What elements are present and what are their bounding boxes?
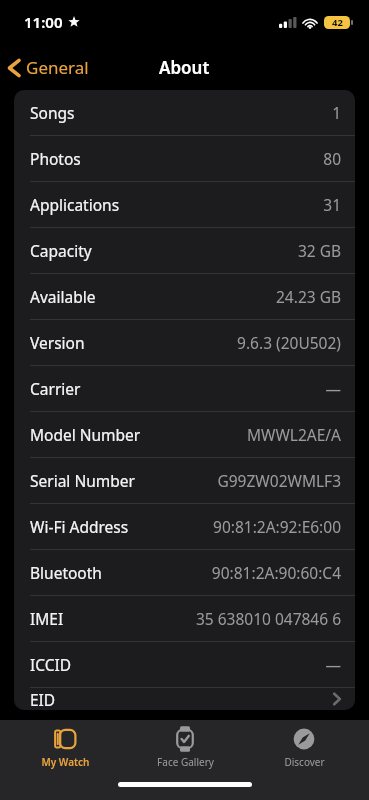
button[interactable]: General: [0, 50, 99, 85]
button[interactable]: My Watch: [10, 724, 120, 771]
button[interactable]: Carrier: [14, 366, 355, 411]
button[interactable]: Discover: [249, 724, 359, 771]
staticText: About: [159, 56, 210, 79]
staticText: Available: [30, 286, 96, 307]
staticText: 80: [323, 148, 341, 169]
button[interactable]: IMEI: [14, 596, 355, 641]
button[interactable]: EID: [14, 688, 355, 710]
staticText: My Watch: [41, 755, 90, 769]
staticText: —: [325, 654, 341, 675]
staticText: 90:81:2A:90:60:C4: [211, 562, 341, 583]
staticText: MWWL2AE/A: [246, 424, 341, 445]
staticText: Songs: [30, 102, 75, 123]
staticText: Face Gallery: [157, 755, 214, 769]
staticText: IMEI: [30, 608, 64, 629]
staticText: 90:81:2A:92:E6:00: [213, 516, 341, 537]
staticText: 42: [332, 16, 343, 29]
staticText: General: [26, 56, 89, 79]
staticText: 35 638010 047846 6: [195, 608, 341, 629]
staticText: Discover: [284, 755, 325, 769]
button[interactable]: Version: [14, 320, 355, 365]
staticText: Serial Number: [30, 470, 135, 491]
staticText: Carrier: [30, 378, 81, 399]
staticText: Model Number: [30, 424, 141, 445]
staticText: Wi-Fi Address: [30, 516, 129, 537]
button[interactable]: Photos: [14, 136, 355, 181]
staticText: —: [325, 378, 341, 399]
button[interactable]: Available: [14, 274, 355, 319]
staticText: Capacity: [30, 240, 92, 261]
staticText: ICCID: [30, 654, 72, 675]
button[interactable]: Bluetooth: [14, 550, 355, 595]
staticText: 31: [323, 194, 341, 215]
staticText: Photos: [30, 148, 81, 169]
button[interactable]: Model Number: [14, 412, 355, 457]
button[interactable]: Songs: [14, 90, 355, 135]
staticText: 1: [332, 102, 341, 123]
staticText: Bluetooth: [30, 562, 102, 583]
staticText: EID: [30, 689, 56, 710]
button[interactable]: Applications: [14, 182, 355, 227]
staticText: 11:00: [24, 12, 63, 32]
other: My Watch: [52, 726, 78, 752]
other: Face Gallery: [172, 726, 198, 752]
button[interactable]: ICCID: [14, 642, 355, 687]
staticText: G99ZW02WMLF3: [217, 470, 341, 491]
staticText: 32 GB: [297, 240, 341, 261]
staticText: Applications: [30, 194, 120, 215]
button[interactable]: Serial Number: [14, 458, 355, 503]
button[interactable]: Face Gallery: [130, 724, 240, 771]
button[interactable]: Wi-Fi Address: [14, 504, 355, 549]
other: Discover: [291, 726, 317, 752]
staticText: Version: [30, 332, 85, 353]
button[interactable]: Capacity: [14, 228, 355, 273]
staticText: 24.23 GB: [275, 286, 341, 307]
staticText: 9.6.3 (20U502): [237, 332, 341, 353]
